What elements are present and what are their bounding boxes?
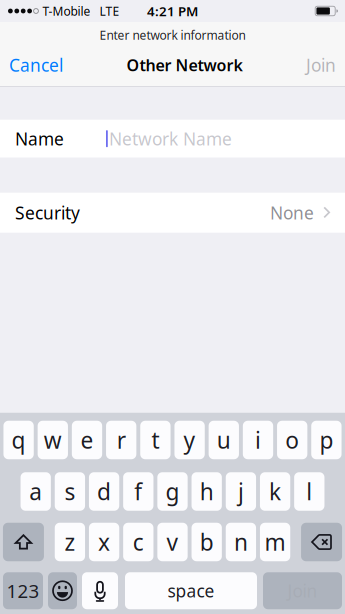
button[interactable]: y — [174, 421, 205, 459]
staticText: Name — [15, 127, 64, 150]
staticText: b — [200, 527, 214, 557]
button[interactable]: r — [106, 421, 136, 459]
staticText: o — [285, 425, 299, 455]
button[interactable]: d — [89, 472, 119, 511]
button[interactable]: o — [277, 421, 307, 459]
button[interactable]: q — [3, 421, 34, 459]
button[interactable]: u — [209, 421, 239, 459]
staticText: Other Network — [126, 54, 242, 76]
staticText: v — [166, 527, 178, 557]
button[interactable]: k — [260, 472, 290, 511]
staticText: 123 — [6, 578, 39, 603]
staticText: n — [234, 527, 248, 557]
staticText: w — [44, 425, 62, 455]
staticText: k — [269, 476, 281, 506]
staticText: q — [12, 425, 26, 455]
button[interactable]: w — [38, 421, 68, 459]
staticText: space — [167, 579, 214, 602]
button[interactable]: e — [72, 421, 102, 459]
button[interactable]: s — [55, 472, 85, 511]
button[interactable]: a — [20, 472, 51, 511]
staticText: i — [255, 425, 261, 455]
staticText: c — [133, 527, 144, 557]
button[interactable]: c — [123, 523, 153, 561]
staticText: s — [64, 476, 75, 506]
staticText: Security — [15, 201, 80, 224]
staticText: g — [165, 476, 179, 506]
staticText: e — [80, 425, 93, 455]
staticText: l — [306, 476, 312, 506]
button[interactable]: Delete — [301, 523, 342, 561]
button[interactable]: l — [294, 472, 324, 511]
button[interactable]: Join — [263, 572, 342, 609]
staticText: T-Mobile — [42, 3, 90, 19]
staticText: Cancel — [9, 53, 63, 76]
button[interactable]: i — [243, 421, 273, 459]
button[interactable]: Shift — [3, 523, 44, 561]
staticText: y — [184, 425, 196, 455]
staticText: a — [29, 476, 42, 506]
staticText: z — [64, 527, 75, 557]
button[interactable]: j — [226, 472, 256, 511]
staticText: Join — [306, 53, 336, 76]
button[interactable]: p — [311, 421, 341, 459]
button[interactable]: Security — [0, 193, 345, 233]
staticText: 4:21 PM — [147, 2, 198, 20]
button[interactable]: Cancel — [0, 54, 72, 76]
button[interactable]: b — [192, 523, 222, 561]
button[interactable]: h — [191, 472, 222, 511]
button[interactable]: m — [260, 523, 290, 561]
staticText: u — [217, 425, 231, 455]
button[interactable]: Join — [297, 54, 345, 76]
button[interactable]: v — [157, 523, 188, 561]
button[interactable]: Dictation — [82, 572, 118, 609]
staticText: None — [270, 201, 314, 224]
staticText: p — [319, 425, 333, 455]
button[interactable]: f — [123, 472, 153, 511]
staticText: LTE — [99, 3, 119, 19]
staticText: Network Name — [109, 127, 232, 150]
staticText: j — [238, 476, 244, 506]
staticText: h — [200, 476, 214, 506]
button[interactable]: g — [157, 472, 188, 511]
button[interactable]: 123 — [3, 572, 43, 609]
button[interactable]: space — [125, 572, 257, 609]
staticText: t — [151, 425, 159, 455]
button[interactable]: x — [89, 523, 119, 561]
staticText: r — [117, 425, 126, 455]
button[interactable]: n — [226, 523, 256, 561]
staticText: f — [134, 476, 142, 506]
button[interactable]: Emoji — [48, 572, 77, 609]
button[interactable]: t — [140, 421, 170, 459]
staticText: Enter network information — [99, 27, 245, 43]
button[interactable]: z — [55, 523, 85, 561]
staticText: x — [98, 527, 110, 557]
staticText: d — [97, 476, 111, 506]
staticText: m — [265, 527, 286, 557]
